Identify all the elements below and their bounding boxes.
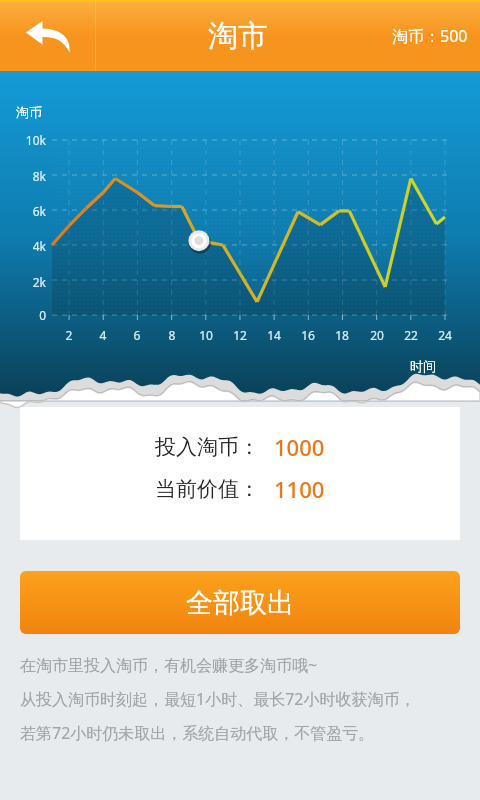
staticText: 22 (399, 327, 423, 343)
staticText: 10k (14, 132, 46, 148)
staticText: 10 (194, 327, 218, 343)
staticText: 24 (433, 327, 457, 343)
staticText: 6 (125, 327, 149, 343)
staticText: 8k (14, 168, 46, 184)
staticText: 6k (14, 203, 46, 219)
staticText: 投入淘币： (155, 434, 260, 460)
button[interactable]: Back (0, 0, 95, 71)
staticText: 时间 (410, 358, 436, 374)
staticText: 全部取出 (186, 586, 294, 620)
staticText: 4k (14, 238, 46, 254)
staticText: 20 (365, 327, 389, 343)
staticText: 12 (228, 327, 252, 343)
staticText: 18 (330, 327, 354, 343)
staticText: 14 (262, 327, 286, 343)
staticText: 2k (14, 274, 46, 290)
staticText: 当前价值： (155, 476, 260, 502)
staticText: 从投入淘币时刻起，最短1小时、最长72小时收获淘币， (20, 688, 416, 710)
staticText: 淘币 (16, 104, 42, 120)
staticText: 4 (91, 327, 115, 343)
staticText: 16 (296, 327, 320, 343)
staticText: 1100 (274, 474, 325, 504)
button[interactable]: 全部取出 (20, 571, 460, 634)
staticText: 淘币：500 (392, 25, 468, 47)
staticText: 0 (14, 307, 46, 323)
staticText: 1000 (274, 432, 325, 462)
button[interactable]: 投入淘币： (20, 407, 460, 540)
staticText: 若第72小时仍未取出，系统自动代取，不管盈亏。 (20, 722, 375, 744)
staticText: 在淘市里投入淘币，有机会赚更多淘币哦~ (20, 654, 318, 676)
staticText: 淘市 (208, 17, 268, 55)
staticText: 8 (160, 327, 184, 343)
staticText: 2 (57, 327, 81, 343)
